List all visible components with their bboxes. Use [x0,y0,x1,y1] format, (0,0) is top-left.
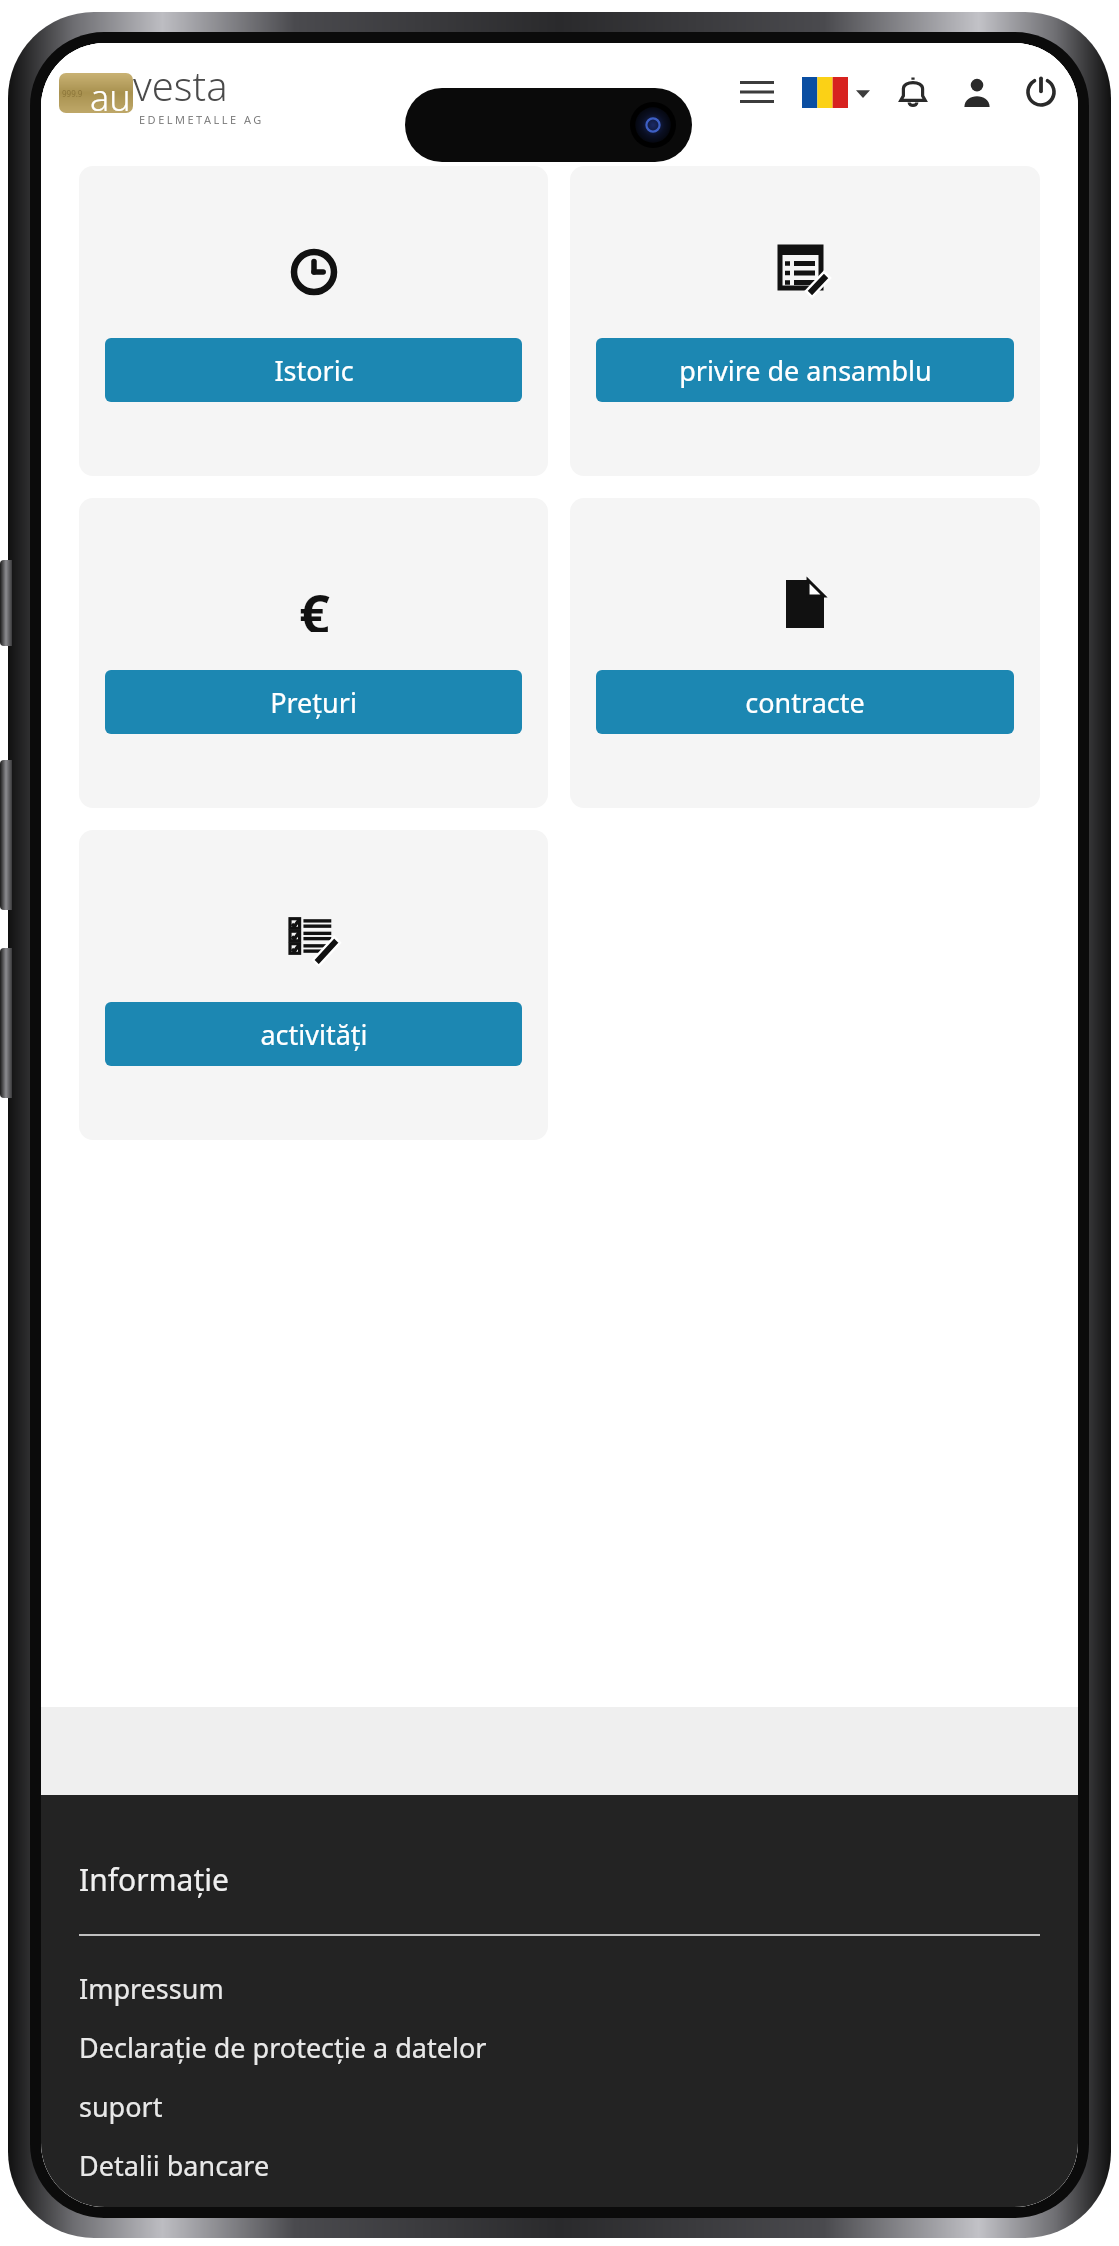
staticText: 999.9 [62,88,83,99]
staticText: Impressum [79,1970,224,2007]
button[interactable]: Notifications [892,71,934,113]
staticText: privire de ansamblu [679,352,932,389]
button[interactable]: activități [105,1002,522,1066]
button[interactable]: Language [802,77,870,108]
button[interactable]: Menu [734,69,780,115]
staticText: Detalii bancare [79,2147,270,2184]
button[interactable]: privire de ansamblu [596,338,1014,402]
button[interactable]: activități [79,830,548,1140]
button[interactable]: Impressum [79,1970,1040,2007]
staticText: Istoric [274,352,354,389]
button[interactable]: suport [79,2088,1040,2125]
staticText: € [299,576,330,632]
button[interactable]: Detalii bancare [79,2147,1040,2184]
staticText: activități [260,1016,368,1053]
staticText: vesta [133,58,228,112]
button[interactable]: privire de ansamblu [570,166,1040,476]
button[interactable]: 999.9 [59,58,264,127]
button[interactable]: contracte [596,670,1014,734]
staticText: EDELMETALLE AG [139,112,264,127]
button[interactable]: contracte [570,498,1040,808]
staticText: suport [79,2088,163,2125]
staticText: au [90,73,131,113]
button[interactable]: Log out [1020,71,1062,113]
button[interactable]: Istoric [105,338,522,402]
staticText: Prețuri [270,684,357,721]
button[interactable]: Prețuri [105,670,522,734]
staticText: Informație [79,1859,229,1900]
button[interactable]: Istoric [79,166,548,476]
button[interactable]: Declarație de protecție a datelor [79,2029,1040,2066]
button[interactable]: € [79,498,548,808]
button[interactable]: Account [956,71,998,113]
staticText: contracte [745,684,865,721]
staticText: Declarație de protecție a datelor [79,2029,487,2066]
